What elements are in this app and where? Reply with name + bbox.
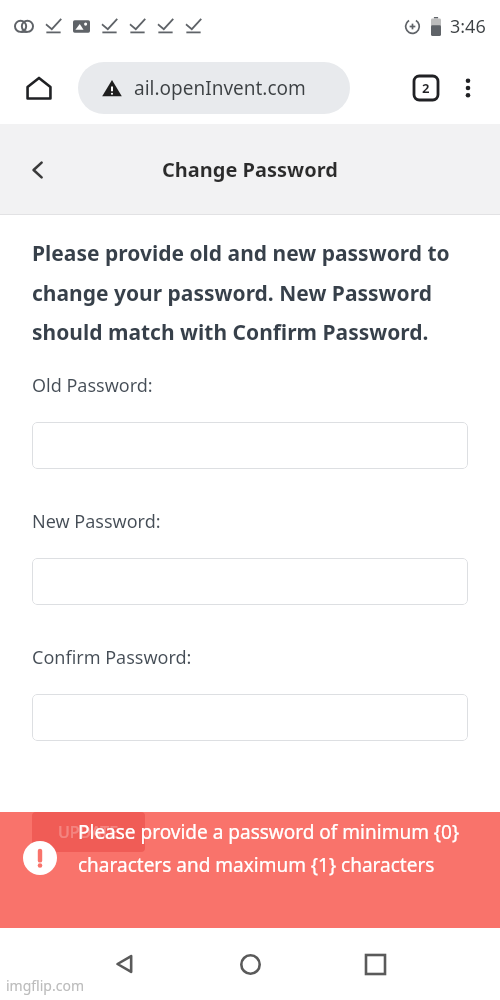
button[interactable] <box>32 558 468 605</box>
staticText: Confirm Password: <box>32 645 192 670</box>
staticText: 2 <box>422 79 430 97</box>
staticText: UPDATE <box>58 821 119 843</box>
button[interactable]: ail.openInvent.com <box>78 62 350 114</box>
staticText: ail.openInvent.com <box>134 75 306 101</box>
staticText: 3:46 <box>450 14 486 39</box>
button[interactable]: Home <box>20 69 58 107</box>
other: More options <box>455 75 481 101</box>
button[interactable]: Tabs <box>404 66 448 110</box>
staticText: Old Password: <box>32 373 153 398</box>
button[interactable]: Recent apps <box>355 944 395 984</box>
staticText: imgflip.com <box>6 976 84 995</box>
button[interactable]: Back <box>18 150 58 190</box>
other: Tabs <box>409 71 443 105</box>
button[interactable] <box>32 422 468 469</box>
other: Home <box>26 76 52 100</box>
staticText: New Password: <box>32 509 161 534</box>
staticText: Please provide old and new password to c… <box>32 239 468 346</box>
button[interactable]: UPDATE <box>32 812 145 852</box>
staticText: Change Password <box>162 156 338 183</box>
staticText: Please provide a password of minimum {0}… <box>78 819 478 877</box>
other: Error <box>23 841 57 875</box>
button[interactable] <box>32 694 468 741</box>
button[interactable]: Home <box>230 944 270 984</box>
button[interactable]: Back <box>105 944 145 984</box>
button[interactable]: More options <box>448 68 488 108</box>
